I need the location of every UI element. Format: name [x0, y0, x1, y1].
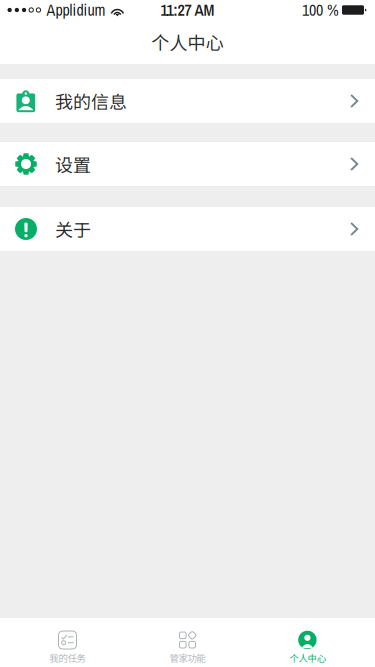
staticText: 管家功能	[169, 651, 205, 664]
staticText: 100 %	[302, 0, 339, 21]
button[interactable]: 我的信息	[0, 79, 375, 123]
button[interactable]: 设置	[0, 142, 375, 186]
button[interactable]: 管家功能	[127, 618, 247, 667]
button[interactable]: 关于	[0, 207, 375, 251]
staticText: 我的任务	[49, 651, 85, 664]
staticText: 我的信息	[55, 88, 127, 114]
staticText: 个人中心	[151, 29, 223, 55]
staticText: 11:27 AM	[160, 0, 214, 21]
staticText: 关于	[55, 216, 91, 242]
staticText: Applidium	[47, 0, 106, 21]
staticText: 设置	[55, 151, 91, 177]
button[interactable]: 个人中心	[247, 618, 367, 667]
staticText: 个人中心	[289, 651, 325, 664]
button[interactable]: 我的任务	[7, 618, 127, 667]
